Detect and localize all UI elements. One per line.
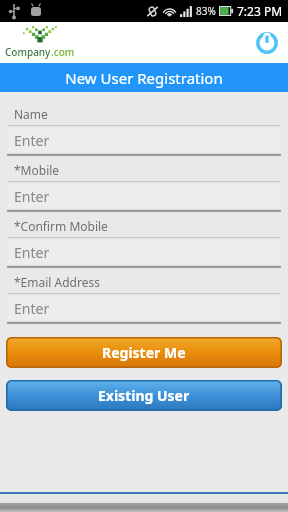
staticText: New User Registration (65, 68, 223, 88)
staticText: .com (51, 45, 75, 59)
staticText: *Mobile (14, 162, 60, 178)
button[interactable]: Enter (7, 181, 281, 212)
button[interactable]: Enter (7, 125, 281, 156)
staticText: 83% (196, 4, 216, 18)
staticText: Enter (14, 243, 50, 262)
staticText: Company (5, 45, 51, 59)
staticText: Enter (14, 131, 50, 150)
staticText: Name (14, 106, 48, 122)
button[interactable]: Register Me (6, 337, 282, 368)
staticText: Register Me (102, 343, 186, 362)
button[interactable]: Power / Log out (253, 29, 281, 57)
button[interactable]: Enter (7, 237, 281, 268)
button[interactable]: Existing User (6, 380, 282, 411)
staticText: Enter (14, 299, 50, 318)
staticText: *Confirm Mobile (14, 218, 108, 234)
staticText: Existing User (98, 386, 190, 405)
staticText: *Email Address (14, 274, 100, 290)
staticText: Enter (14, 187, 50, 206)
staticText: 7:23 PM (237, 3, 283, 19)
button[interactable]: Enter (7, 293, 281, 324)
